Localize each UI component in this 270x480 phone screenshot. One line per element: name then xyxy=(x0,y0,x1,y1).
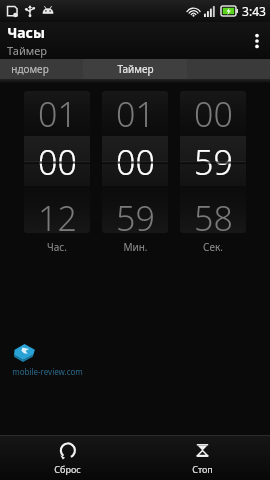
button[interactable]: 00 xyxy=(180,91,246,233)
staticText: 58 xyxy=(194,195,233,233)
button[interactable]: More options xyxy=(244,22,270,59)
staticText: 59 xyxy=(194,139,233,185)
staticText: Таймер xyxy=(117,62,154,76)
button[interactable]: 01 xyxy=(102,91,168,233)
staticText: Сброс xyxy=(54,463,81,475)
staticText: Час. xyxy=(47,240,67,254)
staticText: 3:43 xyxy=(242,3,266,19)
button[interactable]: Часы xyxy=(7,23,47,58)
staticText: 59 xyxy=(116,195,155,233)
staticText: Стоп xyxy=(192,463,213,475)
staticText: Таймер xyxy=(7,43,47,58)
button[interactable]: Стоп xyxy=(135,436,270,480)
button[interactable]: 01 xyxy=(24,91,90,233)
staticText: 00 xyxy=(194,91,233,131)
staticText: 01 xyxy=(116,91,155,131)
button[interactable]: ндомер xyxy=(0,59,83,79)
staticText: 00 xyxy=(38,139,77,185)
staticText: Мин. xyxy=(123,240,148,254)
staticText: 01 xyxy=(38,91,77,131)
button[interactable]: Таймер xyxy=(83,59,187,79)
button[interactable]: Сброс xyxy=(0,436,135,480)
staticText: 00 xyxy=(116,139,155,185)
staticText: Часы xyxy=(7,23,45,42)
staticText: Сек. xyxy=(203,240,223,254)
staticText: mobile-review.com xyxy=(12,366,83,377)
staticText: ндомер xyxy=(11,62,49,76)
staticText: 12 xyxy=(38,195,77,233)
